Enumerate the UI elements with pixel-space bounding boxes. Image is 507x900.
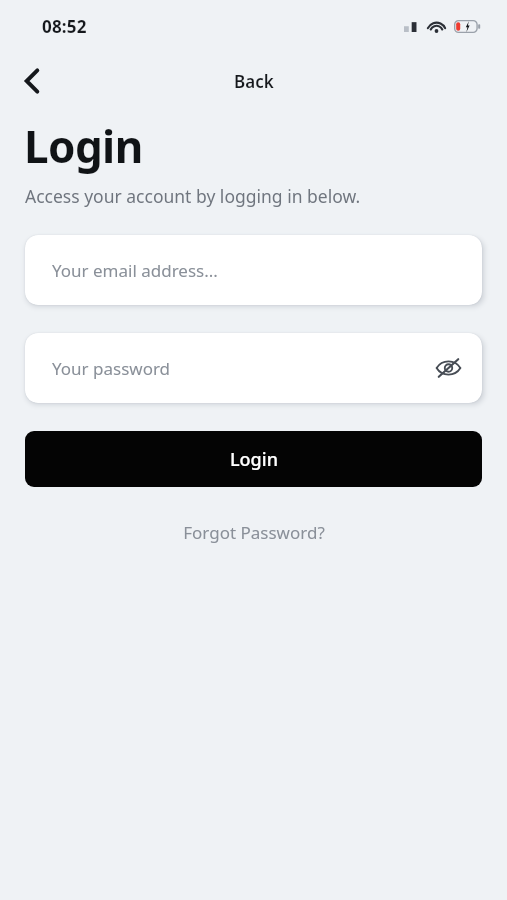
staticText: Your password: [52, 357, 171, 380]
staticText: Access your account by logging in below.: [25, 184, 361, 208]
button[interactable]: Your password: [25, 333, 482, 403]
staticText: Forgot Password?: [183, 521, 325, 544]
button[interactable]: Show password: [428, 348, 468, 388]
button[interactable]: Back: [12, 61, 52, 101]
button[interactable]: Your email address...: [25, 235, 482, 305]
staticText: Your email address...: [52, 259, 218, 282]
staticText: Login: [230, 447, 278, 472]
button[interactable]: Login: [25, 431, 482, 487]
button[interactable]: Forgot Password?: [173, 517, 335, 548]
staticText: Back: [234, 70, 274, 93]
staticText: 08:52: [42, 15, 87, 38]
staticText: Login: [24, 116, 143, 176]
